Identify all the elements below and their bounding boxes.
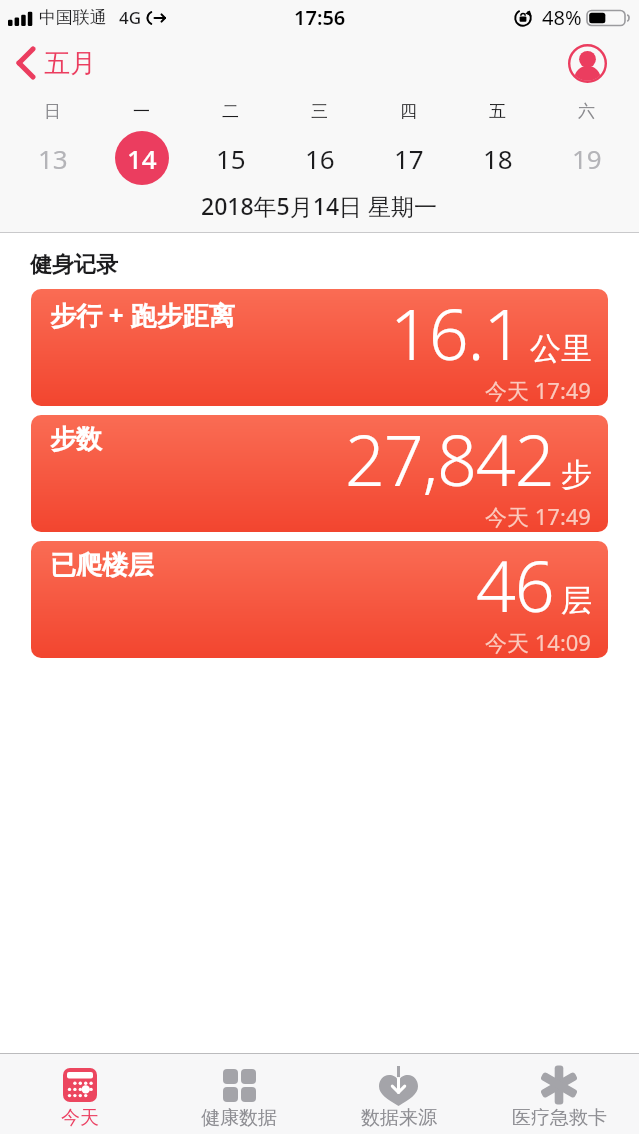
staticText: 公里 [530,329,592,368]
button[interactable]: 数据来源 [319,1054,479,1134]
button[interactable]: 15 [186,130,275,186]
staticText: 步行 + 跑步距离 [50,297,235,333]
button[interactable]: 18 [453,130,542,186]
button[interactable]: 19 [542,130,631,186]
staticText: 四 [400,101,417,122]
staticText: 医疗急救卡 [512,1106,607,1130]
staticText: 五 [489,101,506,122]
button[interactable]: 健康数据 [159,1054,319,1134]
staticText: 今天 [61,1106,99,1130]
staticText: 五月 [44,47,96,80]
staticText: 中国联通 [39,7,107,28]
staticText: 数据来源 [361,1106,437,1130]
button[interactable]: 五月 [15,46,96,80]
staticText: 48% [542,4,582,31]
button[interactable]: 16 [275,130,364,186]
button[interactable] [568,44,607,83]
staticText: 14 [127,141,157,176]
staticText: 46 [476,541,554,632]
staticText: 已爬楼层 [50,549,154,582]
staticText: 15 [216,141,246,176]
staticText: 日 [44,101,61,122]
button[interactable]: 17 [364,130,453,186]
staticText: 步 [561,455,592,494]
staticText: 16.1 [390,289,523,380]
staticText: 健身记录 [30,251,118,279]
staticText: 4G [119,6,142,29]
staticText: 17:56 [294,4,346,31]
staticText: 二 [222,101,239,122]
button[interactable]: 步数 [31,415,608,532]
staticText: 27,842 [345,415,554,506]
staticText: 一 [133,101,150,122]
staticText: 18 [483,141,513,176]
button[interactable]: 今天 [0,1054,159,1134]
button[interactable]: 已爬楼层 [31,541,608,658]
staticText: 步数 [50,423,102,456]
button[interactable]: 步行 + 跑步距离 [31,289,608,406]
staticText: 健康数据 [201,1106,277,1130]
staticText: 2018年5月14日 星期一 [201,190,438,221]
button[interactable]: 13 [8,130,97,186]
staticText: 六 [578,101,595,122]
button[interactable]: 医疗急救卡 [479,1054,639,1134]
staticText: 层 [561,581,592,620]
button[interactable]: 14 [97,130,186,186]
staticText: 13 [38,141,68,176]
staticText: 今天 17:49 [485,501,591,531]
staticText: 今天 17:49 [485,375,591,405]
staticText: 16 [305,141,335,176]
staticText: 三 [311,101,328,122]
staticText: 今天 14:09 [485,627,591,657]
staticText: 17 [394,141,424,176]
staticText: 19 [572,141,602,176]
